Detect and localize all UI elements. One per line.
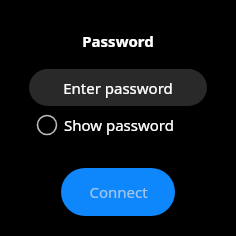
- staticText: Password: [82, 31, 154, 51]
- staticText: Show password: [64, 115, 174, 135]
- button[interactable]: Connect: [61, 168, 175, 216]
- staticText: Connect: [89, 182, 148, 202]
- button[interactable]: Show password toggle: [29, 110, 207, 140]
- button[interactable]: Enter password: [29, 69, 207, 106]
- other: Show password toggle: [36, 114, 58, 136]
- staticText: Enter password: [63, 78, 173, 98]
